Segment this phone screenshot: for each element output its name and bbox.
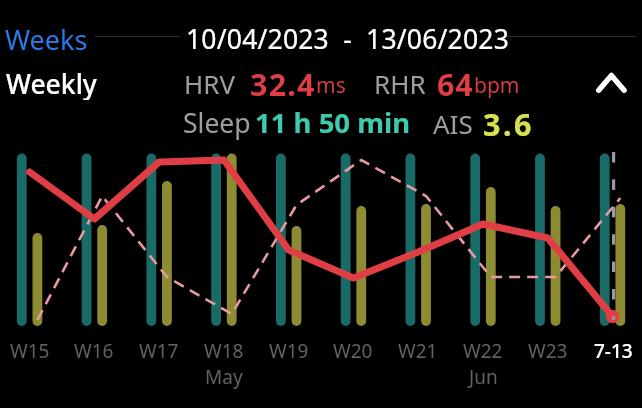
staticText: AIS — [433, 106, 473, 141]
staticText: HRV — [184, 66, 236, 101]
staticText: 11 h 50 min — [255, 104, 411, 141]
staticText: W21 — [398, 338, 438, 364]
staticText: Weeks — [5, 21, 88, 55]
staticText: 10/04/2023 - 13/06/2023 — [186, 21, 510, 57]
button[interactable]: Weeks — [2, 18, 90, 52]
staticText: W23 — [528, 338, 568, 364]
staticText: W15 — [10, 338, 50, 364]
staticText: W18 — [204, 338, 244, 364]
staticText: 32.4 — [250, 63, 316, 105]
staticText: Weekly — [6, 66, 97, 100]
staticText: RHR — [374, 66, 426, 101]
staticText: W17 — [139, 338, 179, 364]
staticText: Sleep — [183, 105, 251, 141]
staticText: May — [205, 364, 243, 390]
button[interactable]: Collapse — [592, 60, 634, 102]
staticText: W16 — [74, 338, 114, 364]
staticText: 7-13 — [594, 338, 633, 364]
button[interactable]: Weekly — [2, 66, 98, 100]
staticText: 64 — [437, 63, 474, 105]
staticText: ms — [316, 71, 346, 100]
staticText: W19 — [269, 338, 309, 364]
staticText: W22 — [463, 338, 503, 364]
staticText: W20 — [333, 338, 373, 364]
staticText: bpm — [474, 71, 520, 100]
staticText: Jun — [469, 364, 498, 390]
staticText: 3.6 — [483, 103, 534, 145]
